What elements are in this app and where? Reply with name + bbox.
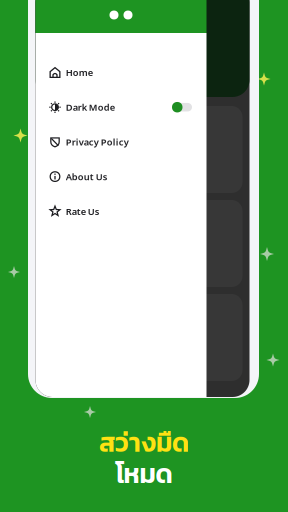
staticText: สว่างมืด [99, 423, 189, 462]
button[interactable]: About Us [35, 166, 206, 188]
staticText: Home [66, 66, 93, 79]
staticText: Dark Mode [66, 101, 115, 113]
button[interactable]: Dark Mode [35, 96, 206, 118]
staticText: Privacy Policy [66, 136, 129, 148]
staticText: โหมด [115, 454, 172, 493]
button[interactable]: Rate Us [35, 200, 206, 222]
button[interactable]: Home [35, 61, 206, 83]
staticText: About Us [66, 170, 108, 183]
button[interactable]: Privacy Policy [35, 131, 206, 153]
staticText: Rate Us [66, 205, 100, 217]
